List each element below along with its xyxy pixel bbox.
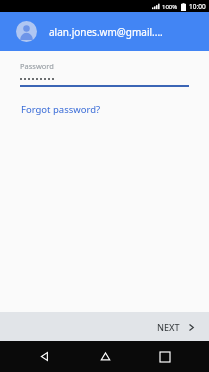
staticText: Forgot password?	[21, 103, 101, 116]
staticText: 100%	[162, 3, 178, 11]
staticText: 10:00	[189, 2, 206, 11]
button[interactable]: Home	[88, 341, 122, 372]
button[interactable]: Recent apps	[148, 341, 182, 372]
button[interactable]: NEXT	[143, 315, 209, 339]
staticText: NEXT	[157, 321, 180, 333]
button[interactable]: Forgot password?	[20, 101, 102, 118]
button[interactable]: alan.jones.wm@gmail....	[0, 12, 209, 51]
staticText: alan.jones.wm@gmail....	[49, 25, 163, 39]
staticText: Password	[20, 61, 54, 71]
button[interactable]: Back	[27, 341, 61, 372]
